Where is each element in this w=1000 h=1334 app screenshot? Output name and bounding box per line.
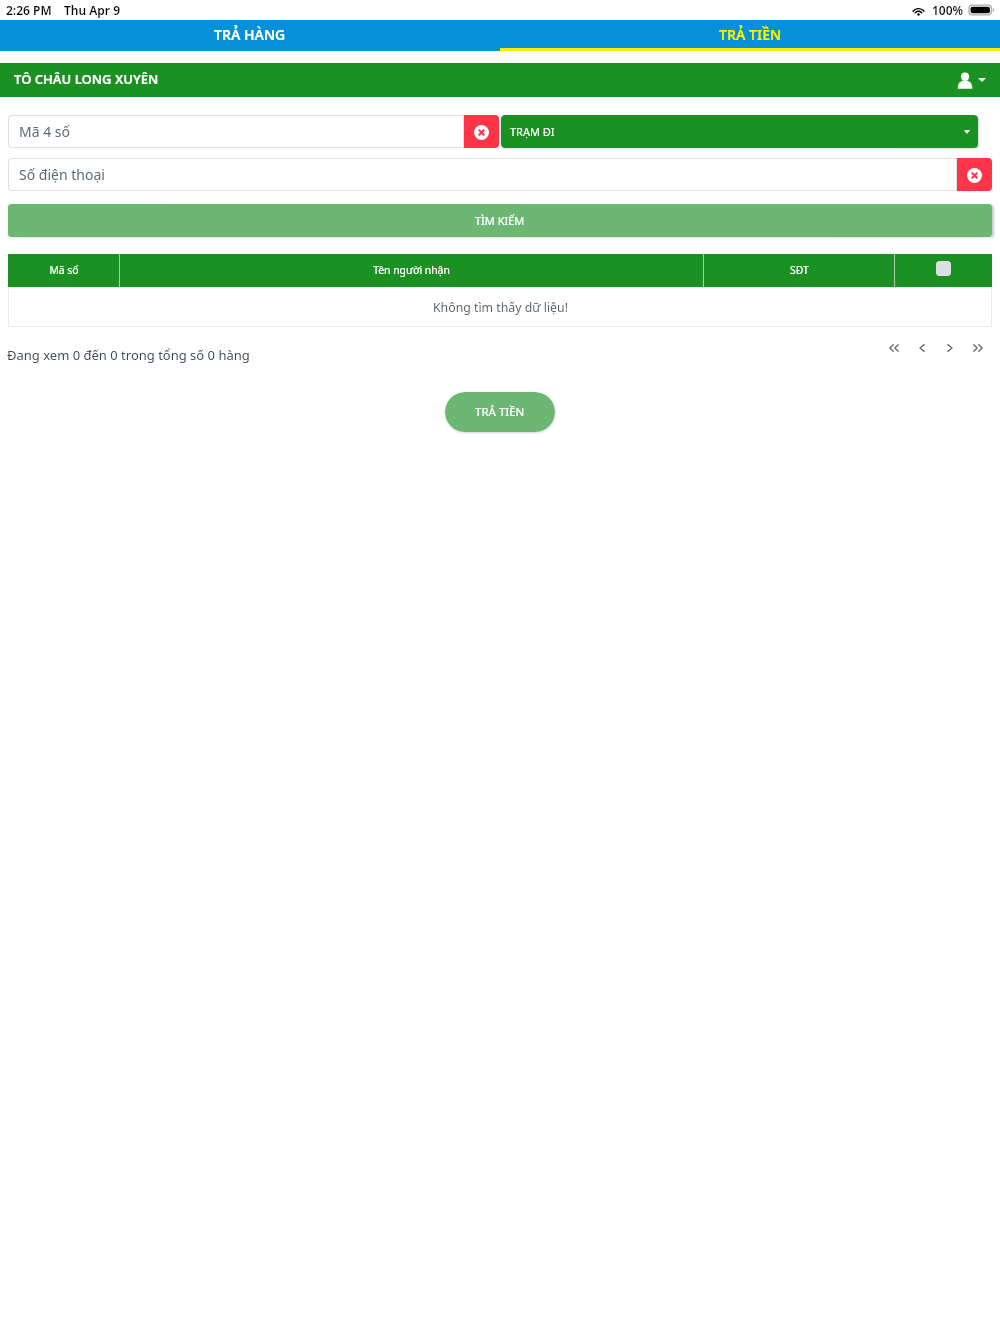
button[interactable]: Previous page (912, 338, 932, 358)
staticText: Mã 4 số (19, 122, 71, 141)
staticText: TRẢ TIỀN (475, 404, 525, 420)
staticText: TRẢ TIỀN (719, 25, 782, 44)
staticText: Tên người nhận (373, 263, 450, 277)
staticText: TÌM KIẾM (475, 213, 525, 228)
staticText: Không tìm thấy dữ liệu! (433, 299, 568, 316)
staticText: TRẠM ĐI (510, 124, 555, 139)
button[interactable]: First page (884, 338, 904, 358)
staticText: Mã số (49, 263, 79, 277)
staticText: 100% (932, 2, 964, 18)
button[interactable]: Số điện thoại (8, 158, 957, 191)
button[interactable]: TRẢ TIỀN (445, 392, 555, 432)
button[interactable]: Mã số (8, 254, 119, 287)
button[interactable]: Next page (940, 338, 960, 358)
staticText: Đang xem 0 đến 0 trong tổng số 0 hàng (7, 346, 250, 364)
staticText: Thu Apr 9 (64, 2, 121, 18)
button[interactable]: TRẢ HÀNG (0, 20, 500, 51)
button[interactable]: SĐT (704, 254, 894, 287)
button[interactable]: Tên người nhận (120, 254, 703, 287)
button[interactable]: Select all rows (895, 254, 992, 287)
button[interactable]: Clear (464, 115, 499, 148)
staticText: Số điện thoại (19, 165, 105, 184)
staticText: SĐT (790, 263, 809, 277)
button[interactable]: TRẢ TIỀN (500, 20, 1000, 51)
staticText: 2:26 PM (6, 2, 52, 18)
button[interactable]: Last page (968, 338, 988, 358)
button[interactable]: Mã 4 số (8, 115, 464, 148)
button[interactable]: Account menu (957, 63, 986, 97)
staticText: TÔ CHÂU LONG XUYÊN (14, 70, 159, 88)
button[interactable]: TRẠM ĐI (501, 115, 978, 148)
button[interactable]: Clear (957, 158, 992, 191)
button[interactable]: TÌM KIẾM (8, 204, 992, 237)
staticText: TRẢ HÀNG (214, 25, 286, 44)
